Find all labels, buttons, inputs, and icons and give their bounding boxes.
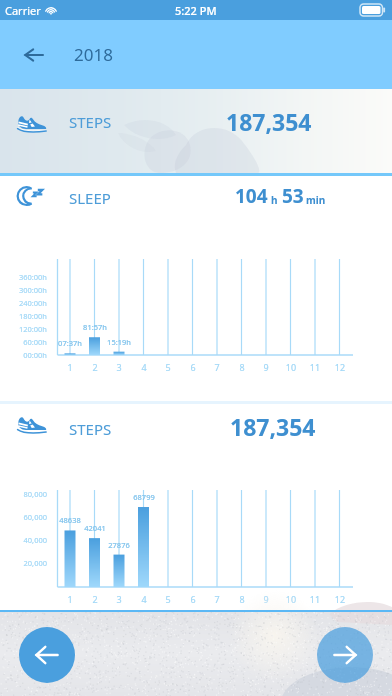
staticText: 9 xyxy=(256,593,276,605)
staticText: 2 xyxy=(85,593,105,605)
staticText: 120:00h xyxy=(5,324,47,334)
staticText: h xyxy=(271,193,278,207)
staticText: 60,000 xyxy=(5,512,47,522)
button[interactable]: STEPS xyxy=(0,404,392,456)
staticText: STEPS xyxy=(69,112,112,132)
staticText: 9 xyxy=(256,361,276,373)
staticText: SLEEP xyxy=(69,188,111,208)
staticText: 7 xyxy=(207,593,227,605)
staticText: 1 xyxy=(60,361,80,373)
staticText: 12 xyxy=(330,593,350,605)
staticText: 104 xyxy=(235,183,268,209)
staticText: 3 xyxy=(109,593,129,605)
staticText: STEPS xyxy=(69,419,112,439)
staticText: 27876 xyxy=(97,540,141,550)
staticText: 81:57h xyxy=(73,322,117,332)
staticText: 8 xyxy=(232,361,252,373)
staticText: Carrier xyxy=(5,3,41,18)
staticText: 5 xyxy=(158,593,178,605)
staticText: 42041 xyxy=(73,523,117,533)
button[interactable]: Next xyxy=(317,627,373,683)
staticText: 5:22 PM xyxy=(175,3,217,18)
staticText: 4 xyxy=(134,593,154,605)
staticText: 187,354 xyxy=(230,411,316,442)
staticText: 7 xyxy=(207,361,227,373)
button[interactable]: STEPS xyxy=(0,89,392,173)
button[interactable]: SLEEP xyxy=(0,176,392,228)
staticText: min xyxy=(306,193,326,207)
staticText: 8 xyxy=(232,593,252,605)
staticText: 11 xyxy=(305,361,325,373)
staticText: 20,000 xyxy=(5,558,47,568)
staticText: 3 xyxy=(109,361,129,373)
staticText: 6 xyxy=(183,593,203,605)
staticText: 187,354 xyxy=(226,106,312,137)
staticText: 07:37h xyxy=(48,338,92,348)
button[interactable]: Previous xyxy=(19,627,75,683)
staticText: 240:00h xyxy=(5,298,47,308)
staticText: 300:00h xyxy=(5,285,47,295)
staticText: 5 xyxy=(158,361,178,373)
staticText: 1 xyxy=(60,593,80,605)
staticText: 80,000 xyxy=(5,489,47,499)
staticText: 360:00h xyxy=(5,272,47,282)
staticText: 48638 xyxy=(48,515,92,525)
button[interactable]: Back xyxy=(12,33,56,77)
staticText: 12 xyxy=(330,361,350,373)
staticText: 60:00h xyxy=(5,337,47,347)
staticText: 53 xyxy=(282,183,304,209)
staticText: 180:00h xyxy=(5,311,47,321)
staticText: 2018 xyxy=(74,43,113,66)
staticText: 40,000 xyxy=(5,535,47,545)
staticText: 68799 xyxy=(122,492,166,502)
staticText: 10 xyxy=(281,593,301,605)
staticText: 15:19h xyxy=(97,337,141,347)
staticText: 2 xyxy=(85,361,105,373)
staticText: 6 xyxy=(183,361,203,373)
staticText: 4 xyxy=(134,361,154,373)
staticText: 11 xyxy=(305,593,325,605)
staticText: 10 xyxy=(281,361,301,373)
staticText: 00:00h xyxy=(5,350,47,360)
